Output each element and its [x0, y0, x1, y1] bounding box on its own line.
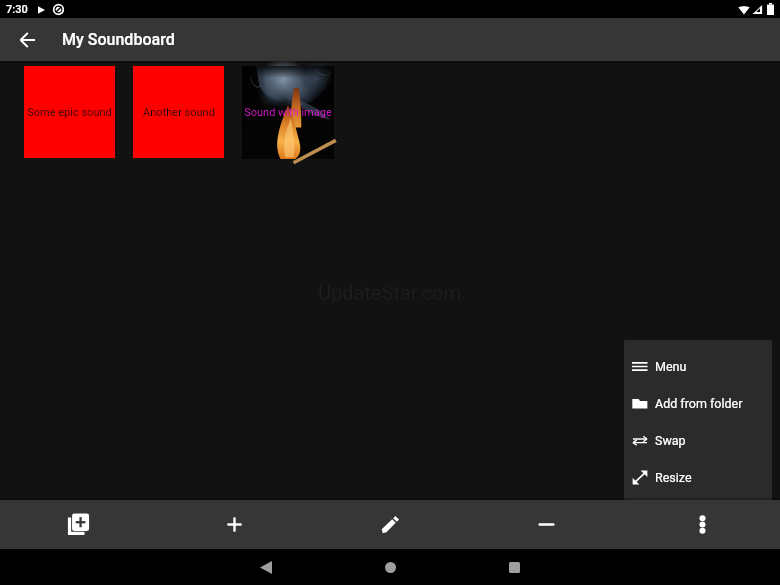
staticText: My Soundboard	[62, 30, 175, 49]
button[interactable]: Remove sound	[468, 500, 624, 549]
staticText: Another sound	[143, 106, 215, 119]
staticText: Sound with image	[244, 106, 332, 119]
staticText: Some epic sound	[27, 106, 112, 119]
button[interactable]: Back	[246, 549, 286, 585]
button[interactable]: Some epic sound	[24, 66, 115, 158]
button[interactable]: Sound with image	[242, 66, 334, 159]
button[interactable]: Menu	[624, 348, 772, 385]
button[interactable]: Add sound	[156, 500, 312, 549]
staticText: Swap	[655, 433, 686, 448]
button[interactable]: More options	[624, 500, 780, 549]
button[interactable]: Recent apps	[494, 549, 534, 585]
button[interactable]: Add from folder	[624, 385, 772, 422]
button[interactable]: Add sound set	[0, 500, 156, 549]
staticText: 7:30	[6, 3, 28, 16]
button[interactable]: Another sound	[133, 66, 224, 158]
staticText: Resize	[655, 470, 692, 485]
staticText: Add from folder	[655, 396, 743, 411]
staticText: Menu	[655, 359, 687, 374]
button[interactable]: Resize	[624, 459, 772, 496]
button[interactable]: Back	[6, 18, 49, 61]
button[interactable]: Home	[370, 549, 410, 585]
staticText: UpdateStar.com	[318, 281, 462, 304]
button[interactable]: Edit	[312, 500, 468, 549]
button[interactable]: Swap	[624, 422, 772, 459]
